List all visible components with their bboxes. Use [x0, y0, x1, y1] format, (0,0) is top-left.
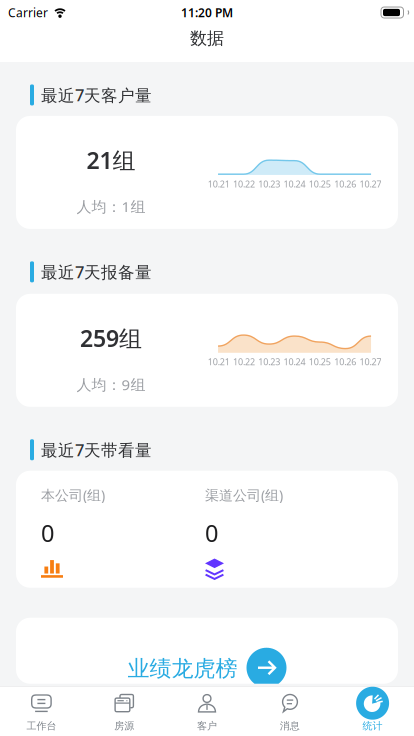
staticText: 10.22	[233, 178, 255, 190]
staticText: 10.23	[258, 356, 280, 368]
staticText: 消息	[280, 720, 300, 732]
staticText: 人均：9组	[76, 374, 145, 394]
button[interactable]: 房源	[83, 687, 166, 732]
staticText: 10.27	[359, 178, 381, 190]
staticText: 11:20 PM	[181, 4, 233, 20]
staticText: 工作台	[26, 720, 56, 732]
staticText: 10.21	[208, 356, 230, 368]
staticText: 259组	[80, 323, 142, 353]
staticText: 10.26	[334, 178, 356, 190]
staticText: 10.25	[309, 356, 331, 368]
staticText: 10.23	[258, 178, 280, 190]
staticText: 最近7天客户量	[41, 84, 152, 106]
staticText: Carrier	[8, 4, 48, 20]
staticText: 0	[205, 517, 218, 548]
staticText: 21组	[86, 145, 135, 175]
button[interactable]: 消息	[248, 687, 331, 732]
staticText: 数据	[190, 28, 224, 49]
staticText: 人均：1组	[76, 196, 145, 216]
button[interactable]: 统计	[331, 687, 414, 732]
button[interactable]: 客户	[166, 687, 248, 732]
staticText: 10.24	[283, 178, 305, 190]
staticText: 10.26	[334, 356, 356, 368]
staticText: 本公司(组)	[41, 486, 105, 504]
staticText: 最近7天报备量	[41, 261, 152, 283]
staticText: 10.25	[309, 178, 331, 190]
staticText: 10.21	[208, 178, 230, 190]
staticText: 渠道公司(组)	[205, 486, 283, 504]
staticText: 10.27	[359, 356, 381, 368]
staticText: 业绩龙虎榜	[127, 655, 237, 682]
staticText: 0	[41, 517, 54, 548]
staticText: 统计	[363, 720, 383, 732]
staticText: 10.24	[283, 356, 305, 368]
staticText: 最近7天带看量	[41, 439, 152, 461]
button[interactable]: 工作台	[0, 687, 83, 732]
staticText: 客户	[197, 720, 217, 732]
staticText: 10.22	[233, 356, 255, 368]
staticText: 房源	[114, 720, 134, 732]
button[interactable]: 业绩龙虎榜	[0, 618, 414, 684]
